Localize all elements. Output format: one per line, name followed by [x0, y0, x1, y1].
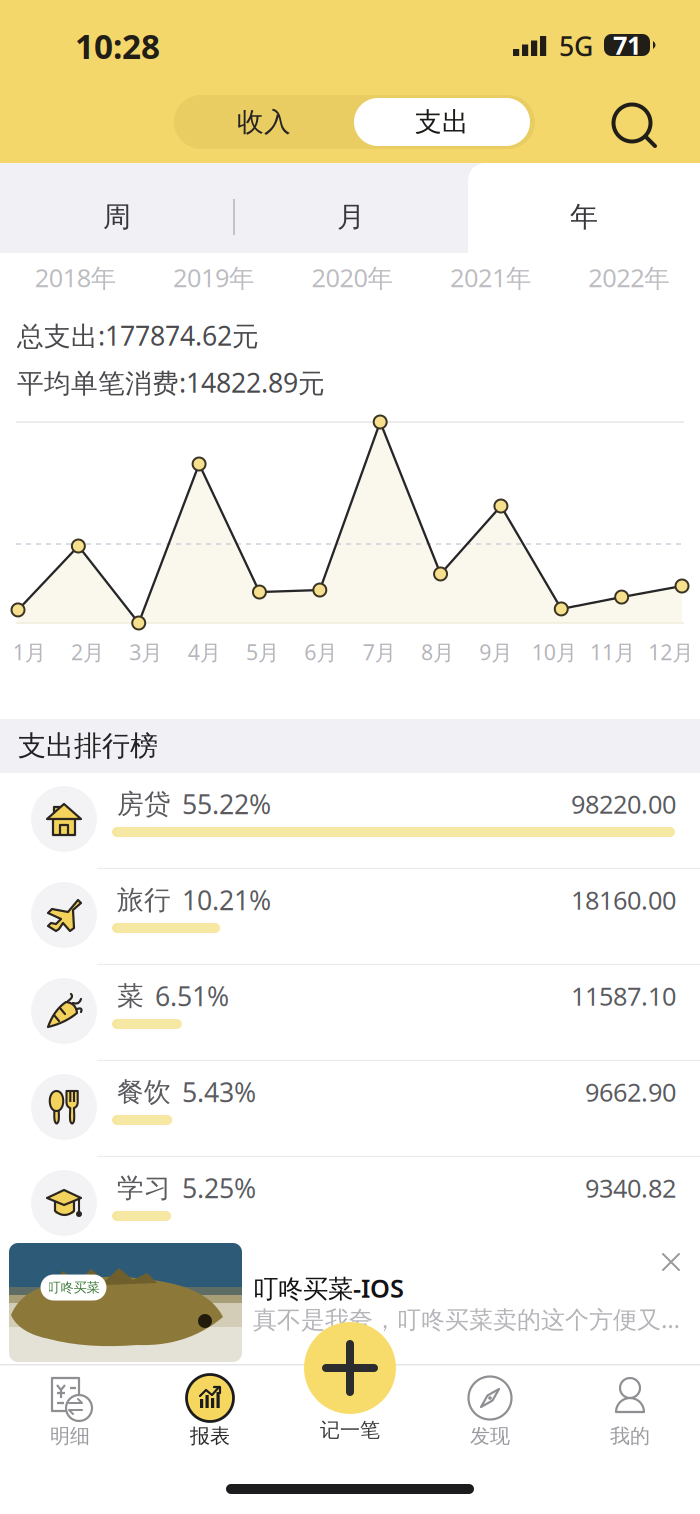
staticText: 记一笔 [320, 1418, 380, 1442]
staticText: 年 [570, 200, 598, 234]
staticText: 2018年 [35, 261, 116, 294]
staticText: 3月 [129, 638, 162, 666]
button[interactable]: 2020年 [283, 253, 421, 302]
button[interactable]: 2019年 [144, 253, 283, 302]
button[interactable]: 学习 [0, 1157, 700, 1253]
staticText: 餐饮 [117, 1076, 171, 1108]
staticText: 周 [103, 200, 131, 234]
staticText: 7月 [363, 638, 396, 666]
staticText: 2021年 [450, 261, 531, 294]
button[interactable]: 2018年 [6, 253, 144, 302]
staticText: 2月 [71, 638, 104, 666]
button[interactable]: 2022年 [560, 253, 698, 302]
staticText: 6.51% [155, 978, 229, 1014]
staticText: 98220.00 [571, 787, 676, 821]
staticText: 平均单笔消费:14822.89元 [17, 365, 325, 400]
button[interactable]: 发现 [420, 1374, 560, 1464]
button[interactable]: Close ad [652, 1243, 690, 1281]
staticText: 2019年 [173, 261, 254, 294]
staticText: 12月 [648, 638, 693, 666]
staticText: 71 [613, 28, 641, 62]
staticText: 1月 [13, 638, 46, 666]
staticText: 明细 [50, 1424, 90, 1448]
staticText: 我的 [610, 1424, 650, 1448]
button[interactable]: 报表 [140, 1374, 280, 1464]
staticText: 真不是我夸，叮咚买菜卖的这个方便又… [253, 1303, 680, 1335]
staticText: 11587.10 [571, 979, 676, 1013]
button[interactable]: 年 [468, 163, 700, 253]
staticText: 房贷 [117, 788, 171, 820]
button[interactable]: 支出 [354, 98, 530, 146]
staticText: 报表 [190, 1424, 230, 1448]
staticText: 收入 [237, 106, 291, 138]
button[interactable]: Add record [304, 1322, 396, 1414]
staticText: 6月 [304, 638, 337, 666]
staticText: 11月 [590, 638, 635, 666]
staticText: 叮咚买菜-IOS [253, 1271, 404, 1305]
staticText: 5月 [246, 638, 279, 666]
staticText: 9340.82 [585, 1171, 676, 1205]
button[interactable]: 旅行 [0, 869, 700, 965]
staticText: 10:28 [75, 24, 160, 68]
staticText: 支出 [415, 106, 469, 138]
staticText: 4月 [188, 638, 221, 666]
button[interactable]: Search [606, 97, 666, 157]
staticText: 9月 [479, 638, 512, 666]
staticText: 支出排行榜 [18, 729, 158, 763]
button[interactable]: 月 [234, 163, 468, 253]
staticText: 总支出:177874.62元 [17, 318, 259, 353]
staticText: 8月 [421, 638, 454, 666]
staticText: 叮咚买菜 [47, 1279, 99, 1296]
staticText: 发现 [470, 1424, 510, 1448]
button[interactable]: 我的 [560, 1374, 700, 1464]
staticText: 月 [337, 200, 365, 234]
staticText: 5.25% [182, 1170, 256, 1206]
staticText: 9662.90 [585, 1075, 676, 1109]
button[interactable]: 周 [0, 163, 234, 253]
staticText: 18160.00 [571, 883, 676, 917]
staticText: 学习 [117, 1172, 171, 1204]
button[interactable]: 叮咚买菜 [0, 1236, 700, 1364]
staticText: 10月 [532, 638, 577, 666]
staticText: 5.43% [182, 1074, 256, 1110]
button[interactable]: 菜 [0, 965, 700, 1061]
button[interactable]: 餐饮 [0, 1061, 700, 1157]
button[interactable]: 收入 [174, 95, 354, 149]
button[interactable]: 房贷 [0, 773, 700, 869]
button[interactable]: 明细 [0, 1374, 140, 1464]
staticText: 5G [559, 28, 593, 64]
staticText: 55.22% [182, 786, 271, 822]
staticText: 2020年 [311, 261, 392, 294]
staticText: 菜 [117, 980, 144, 1012]
staticText: 2022年 [588, 261, 669, 294]
button[interactable]: 2021年 [421, 253, 560, 302]
staticText: 10.21% [182, 882, 271, 918]
staticText: 旅行 [117, 884, 171, 916]
